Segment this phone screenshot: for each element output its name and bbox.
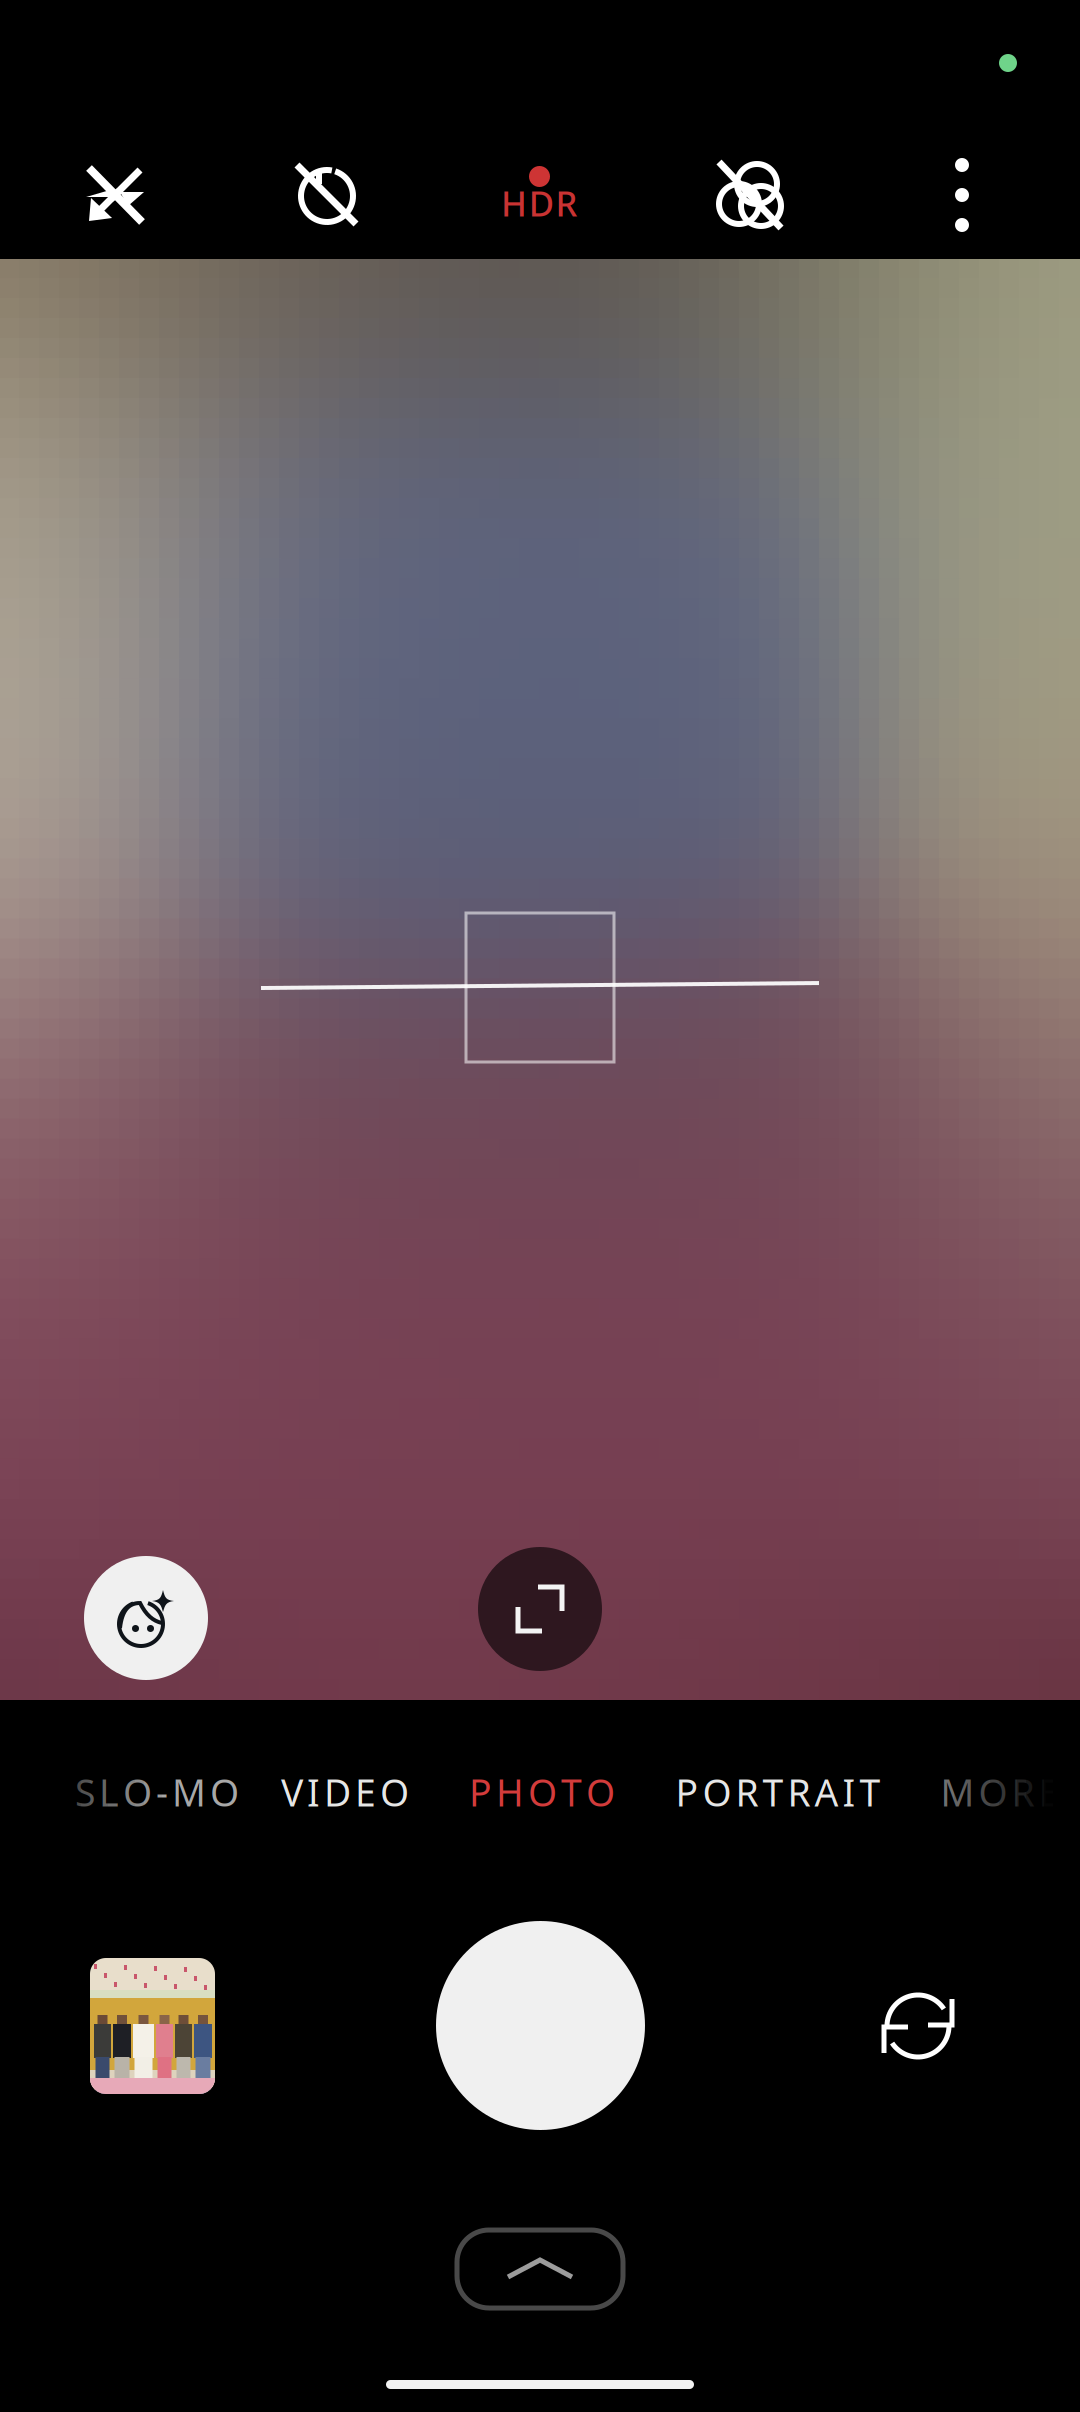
button[interactable]: P O R T R A I T [638,1742,918,1842]
button[interactable]: S L O - M O [27,1742,287,1842]
button[interactable]: V I D E O [245,1742,445,1842]
staticText: P O R T R A I T [675,1767,880,1817]
button[interactable]: Show camera controls [457,2230,623,2308]
staticText: M O R E [940,1767,1059,1817]
button[interactable]: P H O T O [442,1742,642,1842]
button[interactable]: Take photo [436,1921,645,2130]
button[interactable]: More options [892,125,1032,265]
button[interactable]: Flash off [45,125,185,265]
button[interactable]: Aspect ratio [478,1547,602,1671]
staticText: S L O - M O [75,1767,239,1817]
button[interactable]: Timer off [257,125,397,265]
button[interactable]: Switch camera [848,1956,988,2096]
button[interactable]: HDR on [474,128,614,268]
staticText: V I D E O [281,1767,409,1817]
staticText: P H O T O [469,1767,615,1817]
button[interactable]: M O R E [900,1742,1080,1842]
button[interactable]: Beauty mode [84,1556,208,1680]
button[interactable]: Filters off [680,125,820,265]
staticText: HDR [501,180,578,226]
button[interactable]: Gallery [90,1958,215,2094]
